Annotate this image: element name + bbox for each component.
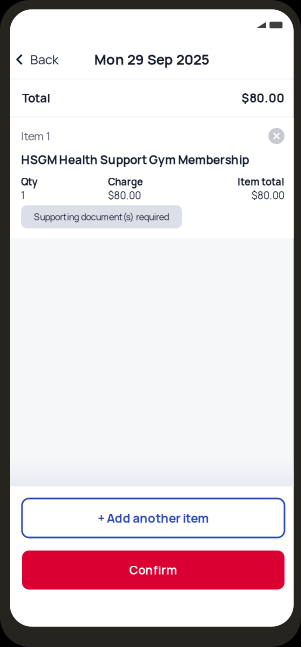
staticText: Total: [22, 90, 50, 106]
button[interactable]: + Add another item: [22, 498, 284, 537]
button[interactable]: Confirm: [22, 550, 284, 589]
staticText: Mon 29 Sep 2025: [94, 50, 209, 69]
staticText: Confirm: [129, 562, 177, 578]
staticText: Item total: [237, 175, 284, 189]
staticText: + Add another item: [98, 510, 209, 526]
staticText: $80.00: [108, 189, 141, 202]
staticText: Qty: [21, 175, 38, 189]
staticText: Item 1: [21, 128, 50, 144]
staticText: $80.00: [241, 90, 284, 106]
staticText: Charge: [108, 175, 143, 189]
staticText: Back: [30, 51, 58, 68]
staticText: $80.00: [251, 189, 284, 202]
staticText: HSGM Health Support Gym Membership: [21, 151, 249, 168]
staticText: 1: [21, 189, 25, 202]
staticText: Supporting document(s) required: [34, 211, 169, 223]
button[interactable]: Remove item: [268, 128, 284, 144]
button[interactable]: Back: [10, 45, 68, 74]
